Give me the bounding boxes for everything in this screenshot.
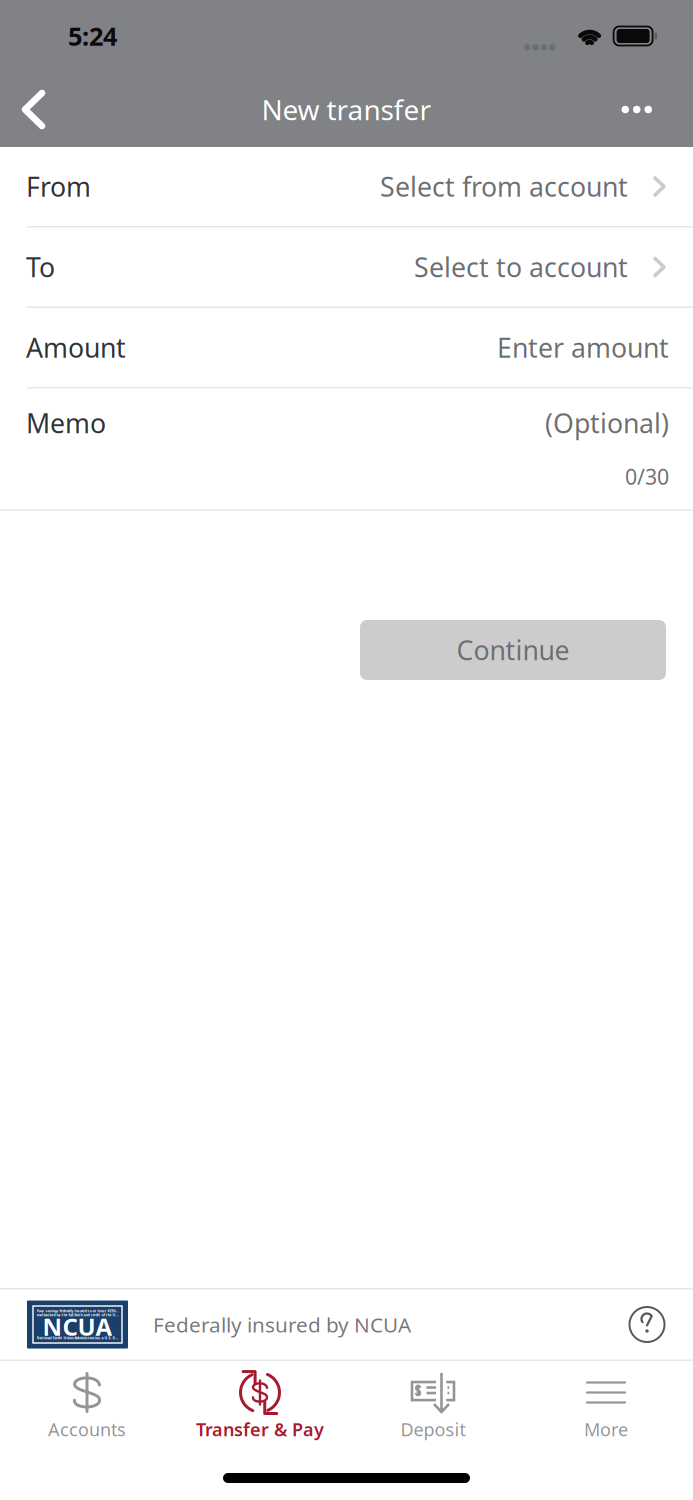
staticText: Deposit: [400, 1417, 465, 1441]
button[interactable]: From: [0, 147, 693, 226]
staticText: NCUA: [42, 1310, 112, 1343]
staticText: From: [26, 168, 91, 205]
button[interactable]: Back: [0, 72, 74, 147]
staticText: Select to account: [414, 249, 628, 285]
button[interactable]: Continue: [360, 620, 666, 680]
staticText: National Credit Union Administration, a …: [36, 1336, 118, 1340]
staticText: More: [584, 1417, 628, 1441]
staticText: Select from account: [380, 168, 628, 205]
staticText: and backed by the full faith and credit …: [36, 1313, 118, 1317]
staticText: Enter amount: [497, 329, 669, 366]
staticText: Transfer & Pay: [196, 1417, 324, 1441]
staticText: Your savings federally insured to at lea…: [36, 1309, 118, 1313]
staticText: Federally insured by NCUA: [153, 1310, 411, 1338]
staticText: (Optional): [545, 405, 669, 441]
button[interactable]: Transfer & Pay: [173, 1361, 346, 1456]
staticText: Memo: [26, 405, 106, 441]
button[interactable]: Deposit: [346, 1361, 519, 1456]
button[interactable]: More: [519, 1361, 692, 1456]
staticText: Amount: [26, 329, 126, 366]
button[interactable]: Help: [618, 1295, 676, 1353]
staticText: 5:24: [68, 19, 117, 53]
button[interactable]: More options: [587, 78, 693, 141]
staticText: Continue: [456, 632, 569, 668]
button[interactable]: To: [0, 227, 693, 306]
button[interactable]: Accounts: [0, 1361, 173, 1456]
staticText: Accounts: [48, 1417, 126, 1441]
staticText: 0/30: [625, 462, 669, 491]
staticText: To: [26, 249, 55, 285]
staticText: New transfer: [261, 90, 431, 128]
button[interactable]: Amount: [0, 308, 693, 387]
